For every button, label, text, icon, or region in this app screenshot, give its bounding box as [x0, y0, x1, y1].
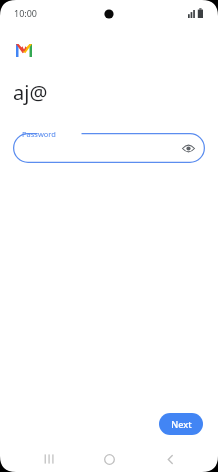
button[interactable]: Recents	[36, 446, 62, 472]
button[interactable]: Next	[159, 413, 203, 435]
button[interactable]: Back	[157, 446, 183, 472]
staticText: 10:00	[14, 7, 38, 19]
button[interactable]: Password	[13, 133, 205, 163]
button[interactable]: Home	[96, 446, 122, 472]
staticText: Password	[22, 129, 56, 139]
staticText: aj@	[13, 79, 48, 106]
button[interactable]: Show password	[180, 140, 197, 157]
staticText: Next	[171, 418, 192, 430]
